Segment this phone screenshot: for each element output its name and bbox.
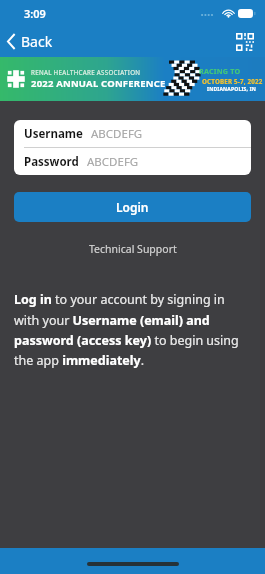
staticText: Log in to your account by signing in wit… bbox=[14, 291, 251, 368]
button[interactable]: Username bbox=[14, 120, 251, 147]
staticText: Technical Support bbox=[89, 242, 177, 256]
staticText: 2022 ANNUAL CONFERENCE bbox=[31, 77, 166, 90]
staticText: ABCDEFG bbox=[91, 126, 143, 142]
staticText: RENAL HEALTHCARE ASSOCIATION bbox=[31, 68, 141, 76]
staticText: RACING TO RECONNECT bbox=[199, 66, 265, 76]
staticText: INDIANAPOLIS, IN bbox=[207, 86, 257, 93]
button[interactable]: Password bbox=[14, 148, 251, 175]
button[interactable]: Technical Support bbox=[79, 240, 187, 258]
button[interactable]: Scan QR code bbox=[233, 30, 257, 54]
button[interactable]: Login bbox=[14, 192, 251, 222]
staticText: Username bbox=[24, 126, 83, 142]
staticText: Password bbox=[24, 154, 79, 170]
staticText: ABCDEFG bbox=[87, 154, 139, 170]
button[interactable]: Back bbox=[0, 28, 63, 55]
staticText: Login bbox=[116, 199, 149, 215]
staticText: OCTOBER 5-7, 2022 bbox=[202, 77, 263, 85]
staticText: 3:09 bbox=[24, 6, 46, 21]
staticText: Back bbox=[21, 32, 53, 51]
